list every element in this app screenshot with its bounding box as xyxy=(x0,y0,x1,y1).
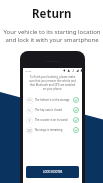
staticText: 10:30 xyxy=(25,69,32,72)
button[interactable]: The scooter is on its stand xyxy=(26,115,79,125)
button[interactable]: The key case is closed xyxy=(26,105,79,115)
staticText: LOCK SCOOTER xyxy=(43,170,63,174)
staticText: The helmet is in the storage case xyxy=(35,98,73,102)
staticText: Your vehicle to its starting location an… xyxy=(3,28,101,44)
button[interactable]: No cargo is remaining xyxy=(26,125,79,135)
staticText: The scooter is on its stand xyxy=(35,118,73,122)
button[interactable]: The helmet is in the storage case xyxy=(26,95,79,105)
button[interactable]: LOCK SCOOTER xyxy=(26,166,79,178)
staticText: No cargo is remaining xyxy=(35,128,73,132)
staticText: Return xyxy=(32,6,72,22)
staticText: To finish your booking, please make sure… xyxy=(28,75,77,91)
staticText: The key case is closed xyxy=(35,108,73,112)
